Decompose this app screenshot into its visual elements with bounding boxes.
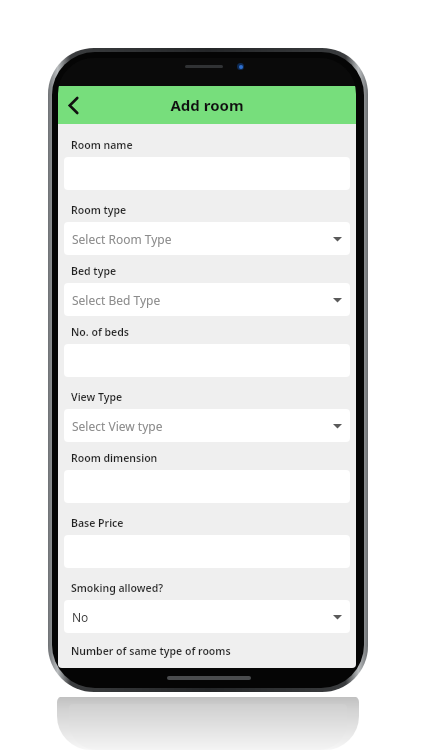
button[interactable]: Select Room Type — [64, 222, 350, 255]
staticText: Room dimension — [71, 451, 158, 465]
button[interactable]: Select Bed Type — [64, 283, 350, 316]
staticText: No — [72, 609, 333, 625]
staticText: Select Room Type — [72, 231, 333, 247]
staticText: Room name — [71, 138, 133, 152]
button[interactable]: Select View type — [64, 409, 350, 442]
staticText: No. of beds — [71, 325, 130, 339]
staticText: Smoking allowed? — [71, 581, 164, 595]
staticText: Select View type — [72, 418, 333, 434]
button[interactable]: Back — [58, 90, 88, 120]
staticText: Select Bed Type — [72, 292, 333, 308]
staticText: View Type — [71, 390, 123, 404]
staticText: Room type — [71, 203, 127, 217]
staticText: Number of same type of rooms — [71, 644, 231, 658]
button[interactable]: No — [64, 600, 350, 633]
staticText: Bed type — [71, 264, 117, 278]
staticText: Base Price — [71, 516, 124, 530]
staticText: Add room — [170, 95, 244, 115]
